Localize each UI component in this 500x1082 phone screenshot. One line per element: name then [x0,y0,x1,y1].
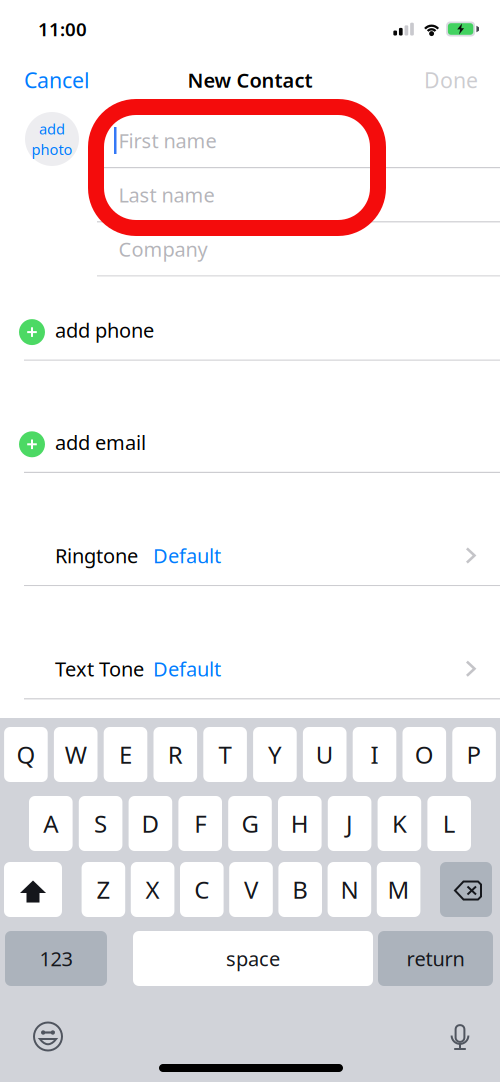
button[interactable]: Q [4,727,48,782]
staticText: S [94,808,107,839]
staticText: D [141,808,159,839]
button[interactable]: X [131,862,174,917]
staticText: return [406,945,464,972]
button[interactable]: Company [0,222,500,275]
button[interactable]: add phone [0,307,500,360]
button[interactable]: Last name [0,168,500,221]
staticText: T [219,739,232,770]
button[interactable]: Y [253,727,297,782]
button[interactable]: I [353,727,396,782]
staticText: Last name [118,181,214,208]
staticText: Q [16,739,35,770]
button[interactable]: B [278,862,322,917]
staticText: X [146,874,160,905]
button[interactable]: K [378,796,421,851]
staticText: E [119,739,132,770]
button[interactable]: R [153,727,197,782]
staticText: F [194,808,206,839]
staticText: G [241,808,258,839]
staticText: Ringtone [55,542,138,569]
staticText: R [168,739,183,770]
staticText: L [443,808,456,839]
staticText: Y [268,739,282,770]
button[interactable]: Emoji keyboard [26,1014,70,1058]
button[interactable]: H [278,796,322,851]
staticText: I [370,739,378,770]
button[interactable]: Z [82,862,125,917]
staticText: J [346,808,353,839]
staticText: New Contact [187,67,312,93]
button[interactable]: N [328,862,371,917]
staticText: Done [424,66,478,94]
button[interactable]: S [79,796,122,851]
button[interactable]: Dictation [438,1014,482,1058]
staticText: add phone [55,317,154,343]
button[interactable]: T [203,727,247,782]
button[interactable]: U [303,727,346,782]
staticText: photo [31,139,72,159]
button[interactable]: J [328,796,371,851]
staticText: Default [153,655,221,682]
staticText: 11:00 [38,17,87,41]
staticText: C [194,874,209,905]
button[interactable]: P [452,727,496,782]
button[interactable]: F [178,796,222,851]
staticText: Cancel [24,66,90,94]
button[interactable]: M [377,862,420,917]
button[interactable]: return [378,931,493,986]
button[interactable]: Done [424,58,478,102]
button[interactable]: space [133,931,373,986]
staticText: V [244,874,258,905]
button[interactable]: W [54,727,97,782]
staticText: add email [55,429,146,456]
staticText: First name [118,127,216,154]
button[interactable]: A [29,796,73,851]
staticText: A [43,808,58,839]
button[interactable]: E [104,727,147,782]
staticText: M [388,874,410,905]
button[interactable]: add email [0,419,500,472]
button[interactable]: Delete [440,862,492,917]
staticText: Company [118,236,207,262]
button[interactable]: O [402,727,446,782]
staticText: Text Tone [55,655,144,682]
staticText: B [292,874,308,905]
button[interactable]: D [129,796,172,851]
staticText: Z [96,874,110,905]
staticText: K [392,808,407,839]
staticText: H [291,808,309,839]
staticText: W [65,739,87,770]
button[interactable]: L [427,796,471,851]
staticText: add [39,119,65,138]
staticText: P [467,739,482,770]
staticText: space [226,945,280,972]
button[interactable]: First name [0,114,500,167]
staticText: O [415,739,434,770]
button[interactable]: G [228,796,272,851]
staticText: Default [153,542,221,569]
button[interactable]: V [229,862,273,917]
staticText: N [340,874,358,905]
staticText: U [316,739,334,770]
button[interactable]: Shift [4,862,62,917]
button[interactable]: C [180,862,224,917]
staticText: 123 [39,945,72,972]
button[interactable]: 123 [5,931,107,986]
button[interactable]: Cancel [24,58,90,102]
button[interactable]: Ringtone [0,532,500,585]
button[interactable]: Text Tone [0,645,500,698]
